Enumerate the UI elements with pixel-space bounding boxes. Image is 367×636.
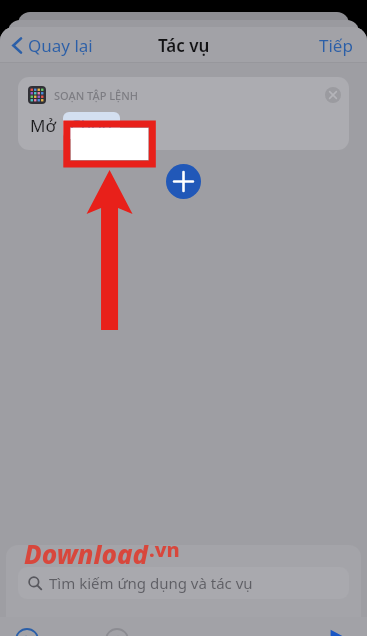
button[interactable]: Tiếp — [315, 30, 357, 61]
button[interactable]: Hoàn tác — [12, 625, 42, 636]
staticText: .vn — [149, 545, 180, 563]
button[interactable]: Làm lại — [102, 625, 132, 636]
button[interactable]: Quay lại — [8, 30, 97, 61]
button[interactable]: SOẠN TẬP LỆNH — [18, 77, 349, 150]
button[interactable]: Thêm tác vụ — [166, 164, 201, 199]
staticText: Chọn — [70, 114, 113, 137]
staticText: Tác vụ — [158, 34, 210, 57]
staticText: Mở — [30, 114, 56, 137]
staticText: Quay lại — [28, 34, 93, 57]
button[interactable]: Chạy — [325, 626, 353, 636]
staticText: Tìm kiếm ứng dụng và tác vụ — [49, 573, 253, 593]
button[interactable]: Chọn — [63, 112, 120, 139]
staticText: Tiếp — [319, 34, 353, 57]
staticText: Download — [24, 545, 149, 571]
staticText: SOẠN TẬP LỆNH — [54, 88, 139, 103]
button[interactable]: Tìm kiếm ứng dụng và tác vụ — [18, 567, 349, 599]
button[interactable]: Xóa tác vụ — [325, 87, 341, 103]
